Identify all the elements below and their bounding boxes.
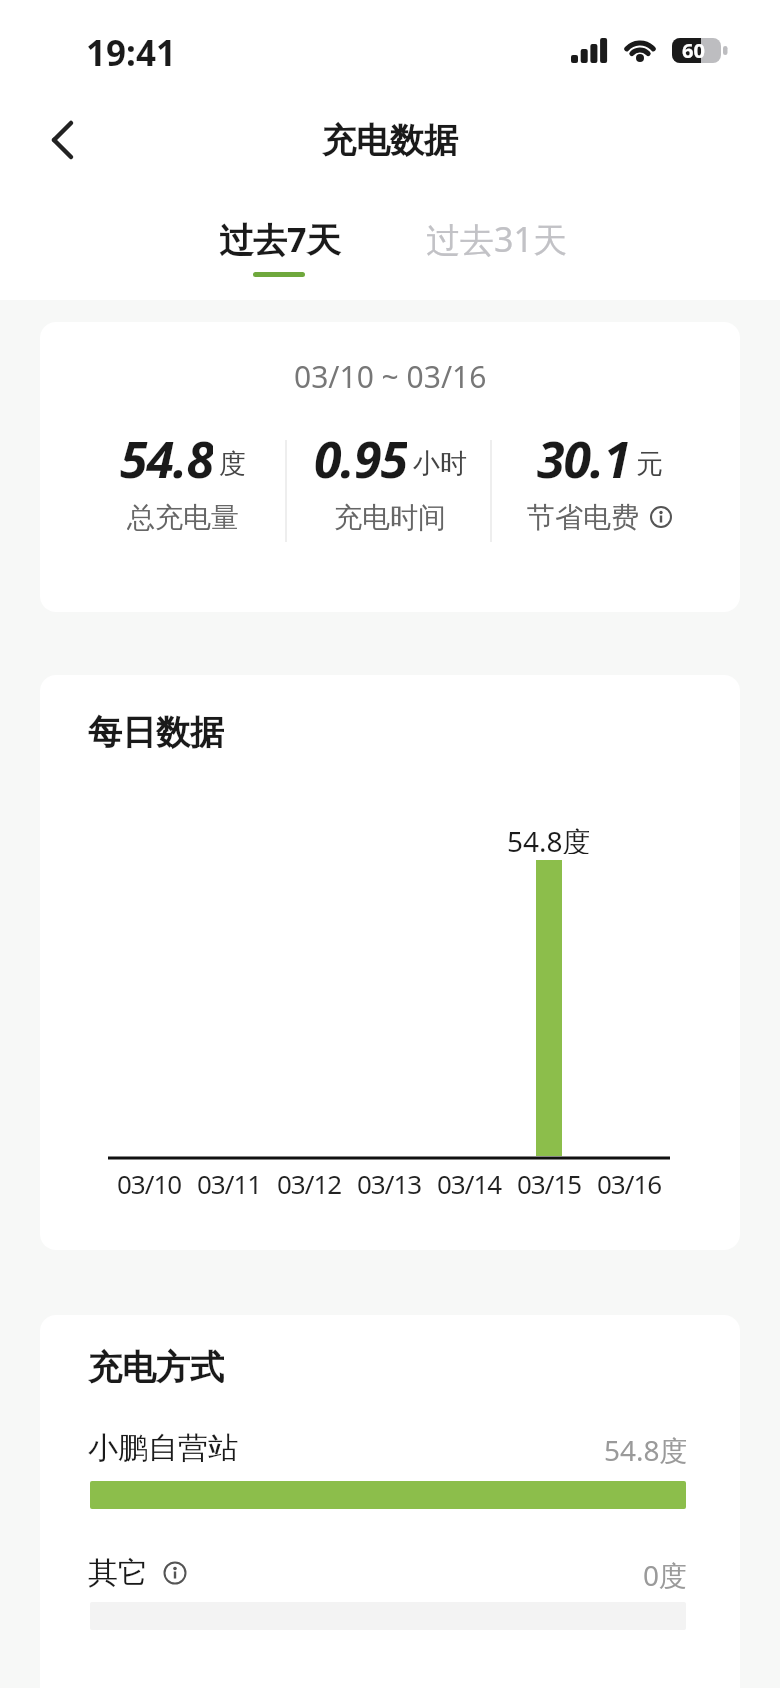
staticText: 54.8度 (604, 1431, 688, 1465)
staticText: 度 (219, 447, 246, 481)
button[interactable] (36, 110, 92, 170)
staticText: 03/16 (597, 1166, 662, 1198)
button[interactable]: 其它 (88, 1553, 188, 1593)
staticText: 03/14 (437, 1166, 502, 1198)
staticText: 小时 (413, 447, 467, 481)
staticText: 总充电量 (127, 500, 239, 534)
button[interactable]: 过去31天 (424, 208, 568, 270)
staticText: 其它 (88, 1554, 148, 1592)
staticText: 60 (682, 37, 705, 64)
button[interactable]: 小鹏自营站 (88, 1428, 238, 1468)
staticText: 元 (636, 447, 663, 481)
staticText: 03/13 (357, 1166, 422, 1198)
staticText: 30.1 (537, 425, 630, 485)
staticText: 03/10 (117, 1166, 182, 1198)
staticText: 充电方式 (88, 1346, 224, 1388)
staticText: 03/10 ~ 03/16 (294, 356, 487, 392)
staticText: 节省电费 (527, 500, 639, 534)
staticText: 每日数据 (88, 711, 224, 753)
staticText: 0.95 (314, 425, 407, 485)
staticText: 0度 (643, 1556, 688, 1590)
staticText: 充电时间 (334, 500, 446, 534)
staticText: 过去31天 (426, 216, 567, 262)
staticText: 03/15 (517, 1166, 582, 1198)
button[interactable]: 过去7天 (216, 208, 344, 270)
staticText: 充电数据 (322, 119, 458, 162)
staticText: 03/12 (277, 1166, 342, 1198)
staticText: 03/11 (197, 1166, 262, 1198)
staticText: 19:41 (86, 29, 176, 77)
staticText: 小鹏自营站 (88, 1429, 238, 1467)
staticText: 54.8 (120, 425, 213, 485)
staticText: 过去7天 (219, 216, 341, 262)
staticText: 54.8度 (507, 822, 591, 854)
